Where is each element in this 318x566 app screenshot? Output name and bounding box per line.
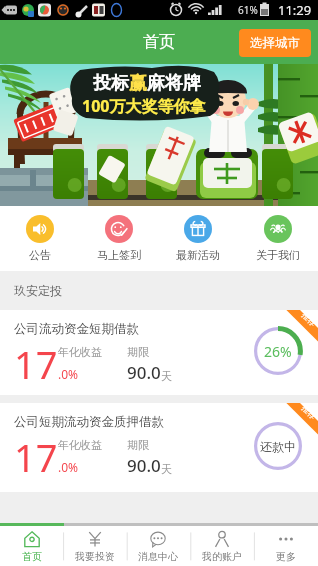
staticText: 玖安定投 [14,283,62,298]
staticText: 关于我们 [256,248,300,262]
button[interactable]: 我的账户 [190,526,254,566]
staticText: 首页 [143,32,175,52]
button[interactable]: 更多 [254,526,318,566]
staticText: 100万大奖等你拿 [82,95,206,117]
button[interactable]: 消息中心 [126,526,190,566]
staticText: 麻将牌 [147,72,201,95]
staticText: 26% [264,342,292,361]
staticText: 17 [14,431,58,483]
staticText: 期限 [127,438,149,452]
staticText: 马上签到 [97,248,141,262]
staticText: 天 [161,462,172,476]
staticText: 我的账户 [202,550,242,563]
button[interactable]: 公司短期流动资金质押借款 [0,403,318,492]
staticText: 更多 [276,550,296,563]
button[interactable]: 公司流动资金短期借款 [0,310,318,395]
staticText: 公告 [29,248,51,262]
staticText: 17 [14,338,58,390]
button[interactable]: 选择城市 [239,29,311,57]
button[interactable]: 公告 [0,206,79,271]
button[interactable]: 投标赢麻将牌活动横幅 [0,64,318,206]
staticText: 赢 [129,72,147,95]
staticText: 90.0 [127,454,161,477]
staticText: 选择城市 [250,35,300,51]
staticText: 投标 [93,72,129,95]
staticText: 最新活动 [176,248,220,262]
button[interactable]: 关于我们 [238,206,318,271]
staticText: 天 [161,369,172,383]
staticText: .0% [58,366,79,382]
staticText: 61% [238,3,258,17]
staticText: 我要投资 [75,550,115,563]
staticText: 公司流动资金短期借款 [14,321,139,337]
staticText: 期限 [127,345,149,359]
staticText: 90.0 [127,361,161,384]
staticText: 消息中心 [138,550,178,563]
staticText: .0% [58,459,79,475]
button[interactable]: 首页 [0,526,63,566]
staticText: 还款中 [260,439,296,454]
staticText: 推荐 [300,310,318,328]
button[interactable]: 马上签到 [79,206,158,271]
staticText: 首页 [22,550,42,563]
staticText: 年化收益 [58,345,102,359]
staticText: 推荐 [300,403,318,421]
staticText: 年化收益 [58,438,102,452]
button[interactable]: 我要投资 [63,526,126,566]
staticText: 公司短期流动资金质押借款 [14,414,164,430]
button[interactable]: 最新活动 [158,206,238,271]
staticText: 11:29 [278,1,312,19]
